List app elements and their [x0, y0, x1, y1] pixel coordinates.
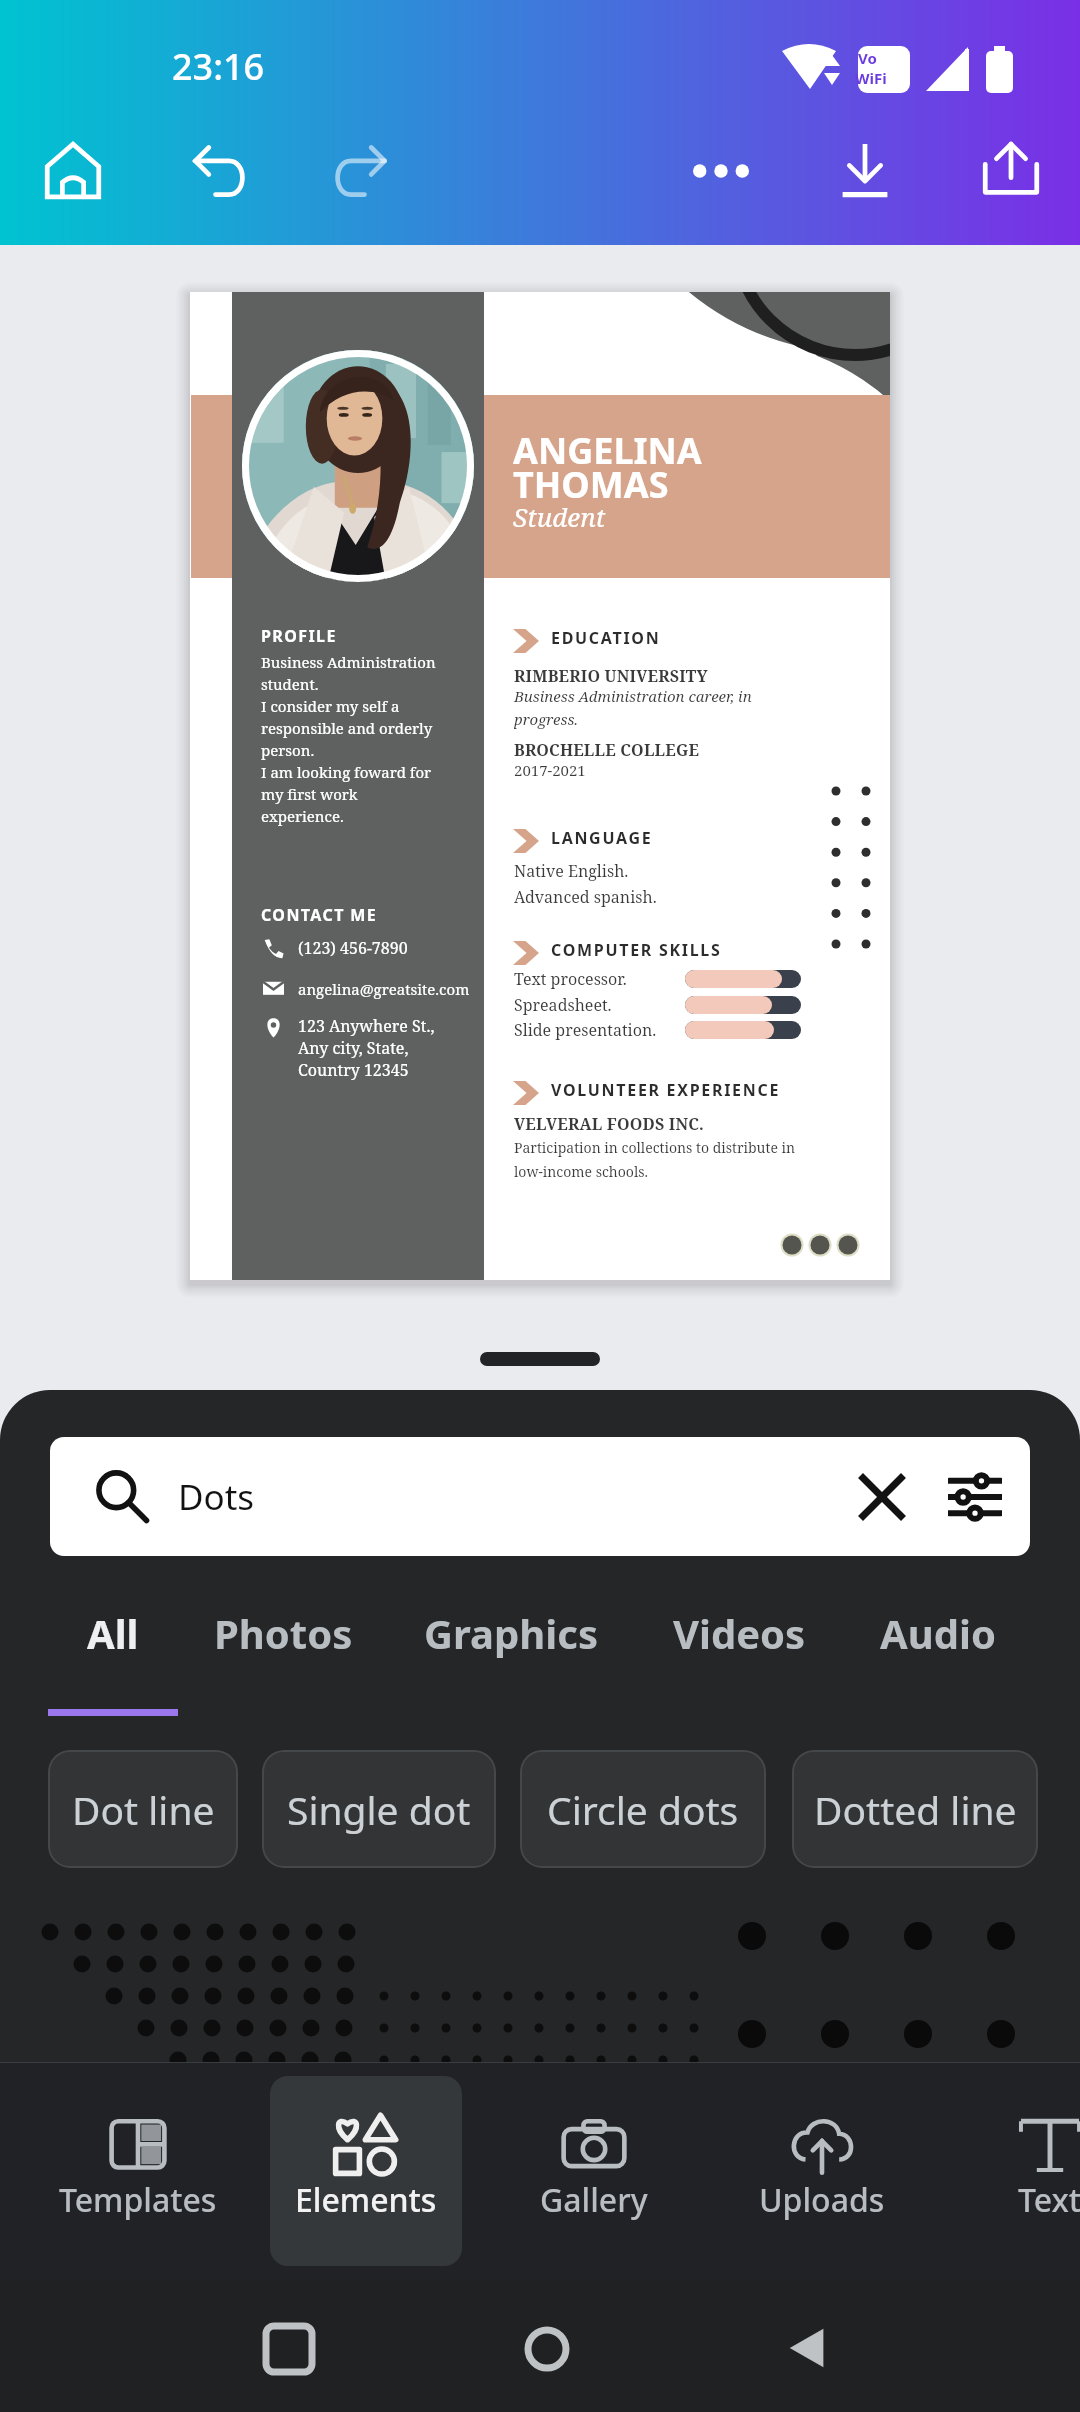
staticText: Business Administration student. I consi… — [261, 652, 461, 827]
button[interactable]: Dot line — [48, 1750, 238, 1868]
staticText: Native English. — [514, 860, 629, 882]
staticText: 123 Anywhere St., Any city, State, Count… — [298, 1015, 435, 1081]
button[interactable]: All — [48, 1606, 178, 1716]
button[interactable]: Templates — [42, 2076, 234, 2266]
button[interactable]: Graphics — [408, 1606, 614, 1716]
button[interactable]: Undo — [175, 126, 265, 216]
button[interactable]: Clear — [849, 1464, 915, 1530]
staticText: Spreadsheet. — [514, 994, 612, 1016]
staticText: All — [87, 1606, 139, 1660]
staticText: Elements — [295, 2178, 437, 2222]
staticText: COMPUTER SKILLS — [551, 939, 722, 961]
staticText: Photos — [214, 1606, 353, 1660]
staticText: THOMAS — [513, 460, 669, 509]
button[interactable]: Gallery — [498, 2076, 690, 2266]
other: Home — [524, 2326, 570, 2372]
staticText: EDUCATION — [551, 627, 661, 649]
button[interactable]: Single dot — [262, 1750, 496, 1868]
staticText: Dots — [178, 1473, 255, 1521]
other: Recents — [266, 2326, 312, 2372]
staticText: Vo — [858, 48, 877, 68]
button[interactable]: Redo — [315, 126, 405, 216]
staticText: Dotted line — [814, 1783, 1017, 1836]
staticText: Videos — [673, 1606, 806, 1660]
staticText: Text — [1018, 2178, 1080, 2222]
button[interactable]: Videos — [656, 1606, 822, 1716]
button[interactable]: Home — [28, 126, 118, 216]
button[interactable]: Dots — [50, 1437, 1030, 1556]
button[interactable]: Text — [954, 2076, 1080, 2266]
button[interactable]: More options — [676, 126, 766, 216]
staticText: Business Administration career, in progr… — [514, 686, 752, 729]
staticText: Uploads — [759, 2178, 885, 2222]
button[interactable]: Dotted line — [792, 1750, 1038, 1868]
button[interactable]: Circle dots — [520, 1750, 766, 1868]
staticText: Participation in collections to distribu… — [514, 1138, 796, 1181]
other: Back — [784, 2324, 832, 2372]
staticText: Single dot — [287, 1783, 471, 1836]
staticText: 23:16 — [172, 42, 265, 91]
staticText: (123) 456-7890 — [298, 937, 408, 959]
staticText: BROCHELLE COLLEGE — [514, 739, 700, 761]
staticText: VOLUNTEER EXPERIENCE — [551, 1079, 781, 1101]
staticText: Advanced spanish. — [514, 886, 657, 908]
staticText: angelina@greatsite.com — [298, 979, 470, 999]
button[interactable]: Share — [966, 126, 1056, 216]
staticText: Graphics — [424, 1606, 598, 1660]
button[interactable]: Audio — [862, 1606, 1014, 1716]
staticText: Audio — [880, 1606, 996, 1660]
staticText: ANGELINA — [513, 426, 702, 475]
staticText: VELVERAL FOODS INC. — [514, 1113, 705, 1135]
staticText: Gallery — [540, 2178, 648, 2222]
staticText: 2017-2021 — [514, 760, 586, 780]
staticText: Circle dots — [547, 1783, 739, 1836]
staticText: Slide presentation. — [514, 1019, 657, 1041]
button[interactable]: Elements — [270, 2076, 462, 2266]
button[interactable]: Uploads — [726, 2076, 918, 2266]
staticText: Templates — [59, 2178, 217, 2222]
staticText: CONTACT ME — [261, 904, 378, 926]
button[interactable] — [0, 1888, 1080, 2064]
button[interactable]: Filters — [942, 1464, 1008, 1530]
staticText: Dot line — [72, 1783, 215, 1836]
staticText: Student — [513, 499, 606, 534]
button[interactable]: Photos — [196, 1606, 370, 1716]
staticText: PROFILE — [261, 625, 337, 647]
staticText: Text processor. — [514, 968, 627, 990]
staticText: LANGUAGE — [551, 827, 653, 849]
button[interactable]: Download — [820, 126, 910, 216]
staticText: RIMBERIO UNIVERSITY — [514, 665, 708, 687]
staticText: WiFi — [855, 68, 887, 88]
